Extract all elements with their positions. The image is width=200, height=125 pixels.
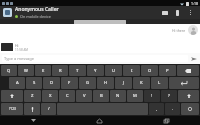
button[interactable]: Type a message — [2, 55, 188, 62]
staticText: , — [156, 106, 158, 112]
button[interactable]: Emoji — [181, 103, 199, 115]
staticText: On mobile device — [20, 14, 51, 19]
staticText: Hi there — [172, 28, 186, 33]
button[interactable]: . — [165, 103, 180, 115]
staticText: J — [123, 80, 125, 86]
button[interactable]: H — [97, 77, 114, 89]
staticText: ? — [168, 93, 170, 99]
button[interactable]: X — [42, 90, 58, 102]
button[interactable]: Shift — [1, 90, 23, 102]
button[interactable]: More options — [184, 6, 197, 19]
button[interactable]: O — [141, 65, 158, 76]
staticText: H — [104, 80, 108, 86]
button[interactable]: / — [41, 103, 56, 115]
staticText: 11:58 AM — [15, 48, 29, 52]
button[interactable]: Recent apps — [133, 116, 200, 125]
button[interactable]: V — [76, 90, 92, 102]
button[interactable]: S — [26, 77, 42, 89]
staticText: K — [140, 80, 143, 86]
staticText: R — [59, 68, 62, 74]
button[interactable]: Z — [24, 90, 41, 102]
staticText: Q — [7, 68, 11, 74]
button[interactable]: Home — [66, 116, 133, 125]
staticText: U — [112, 68, 116, 74]
button[interactable]: M — [127, 90, 143, 102]
button[interactable]: Voice input — [24, 103, 40, 115]
button[interactable]: F — [61, 77, 78, 89]
staticText: Type a message — [4, 56, 35, 61]
button[interactable]: ! — [144, 90, 160, 102]
button[interactable]: Back — [0, 116, 66, 125]
button[interactable]: Contact avatar — [3, 8, 12, 17]
staticText: Anonymous Caller — [15, 6, 59, 13]
button[interactable]: T — [69, 65, 86, 76]
button[interactable]: Video call — [158, 6, 171, 19]
staticText: B — [100, 93, 103, 99]
button[interactable]: ? — [161, 90, 177, 102]
button[interactable]: L — [151, 77, 168, 89]
button[interactable]: P — [159, 65, 176, 76]
staticText: F — [68, 80, 71, 86]
staticText: G — [86, 80, 90, 86]
staticText: O — [148, 68, 152, 74]
staticText: P — [166, 68, 169, 74]
staticText: V — [83, 93, 86, 99]
button[interactable]: Y — [87, 65, 104, 76]
button[interactable]: W — [18, 65, 34, 76]
staticText: C — [66, 93, 69, 99]
button[interactable]: Send — [190, 55, 198, 63]
staticText: Z — [31, 93, 34, 99]
button[interactable]: R — [52, 65, 68, 76]
staticText: M — [133, 93, 137, 99]
button[interactable]: G — [79, 77, 96, 89]
button[interactable]: Photo attachment — [1, 43, 13, 51]
staticText: W — [24, 68, 28, 74]
staticText: / — [48, 106, 50, 112]
staticText: 1:18 — [191, 1, 198, 6]
button[interactable]: Backspace — [177, 65, 199, 76]
staticText: E — [42, 68, 45, 74]
staticText: T — [76, 68, 79, 74]
staticText: ! — [151, 93, 153, 99]
button[interactable]: , — [149, 103, 164, 115]
staticText: I — [131, 68, 133, 74]
button[interactable]: K — [133, 77, 150, 89]
button[interactable]: ?123 — [1, 103, 23, 115]
staticText: . — [172, 106, 174, 112]
button[interactable]: Enter — [169, 77, 199, 89]
button[interactable]: C — [59, 90, 75, 102]
button[interactable]: D — [43, 77, 60, 89]
button[interactable]: J — [115, 77, 132, 89]
button[interactable]: I — [123, 65, 140, 76]
button[interactable]: Shift right — [178, 90, 199, 102]
staticText: ?123 — [9, 107, 16, 111]
staticText: Y — [94, 68, 97, 74]
button[interactable]: U — [105, 65, 122, 76]
staticText: D — [50, 80, 54, 86]
staticText: A — [16, 80, 19, 86]
button[interactable]: B — [93, 90, 109, 102]
button[interactable]: N — [110, 90, 126, 102]
staticText: N — [116, 93, 120, 99]
staticText: X — [49, 93, 52, 99]
button[interactable]: Q — [1, 65, 17, 76]
button[interactable]: Call — [171, 6, 184, 19]
staticText: S — [33, 80, 36, 86]
button[interactable]: E — [35, 65, 51, 76]
staticText: Hi — [15, 43, 19, 48]
button[interactable]: A — [9, 77, 25, 89]
staticText: L — [158, 80, 161, 86]
